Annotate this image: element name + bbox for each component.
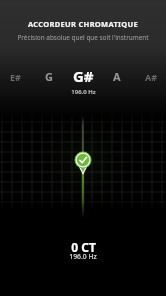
- staticText: E#: [10, 71, 21, 83]
- button[interactable]: G#: [63, 64, 103, 87]
- staticText: G: [45, 69, 53, 84]
- staticText: 0 CT: [71, 239, 96, 255]
- staticText: A#: [145, 71, 158, 83]
- staticText: Précision absolue quel que soit l'instru…: [17, 33, 149, 42]
- button[interactable]: A#: [131, 68, 166, 85]
- button[interactable]: A: [97, 67, 137, 86]
- staticText: A: [113, 69, 121, 84]
- staticText: ACCORDEUR CHROMATIQUE: [28, 19, 138, 29]
- staticText: 196.0 Hz: [71, 88, 96, 96]
- staticText: 196.0 Hz: [69, 252, 97, 261]
- staticText: G#: [73, 66, 94, 86]
- button[interactable]: E#: [0, 68, 35, 85]
- button[interactable]: G: [29, 67, 69, 86]
